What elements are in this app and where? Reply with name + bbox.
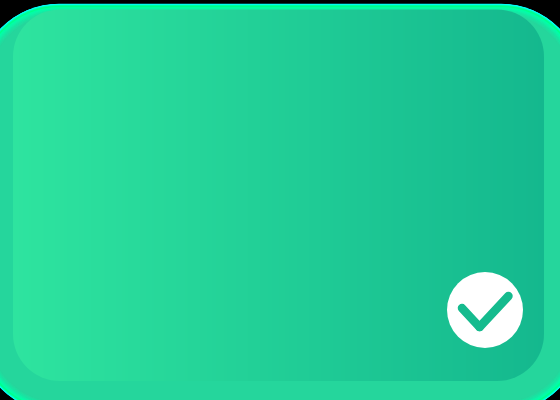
button[interactable]: Confirm bbox=[447, 272, 523, 348]
